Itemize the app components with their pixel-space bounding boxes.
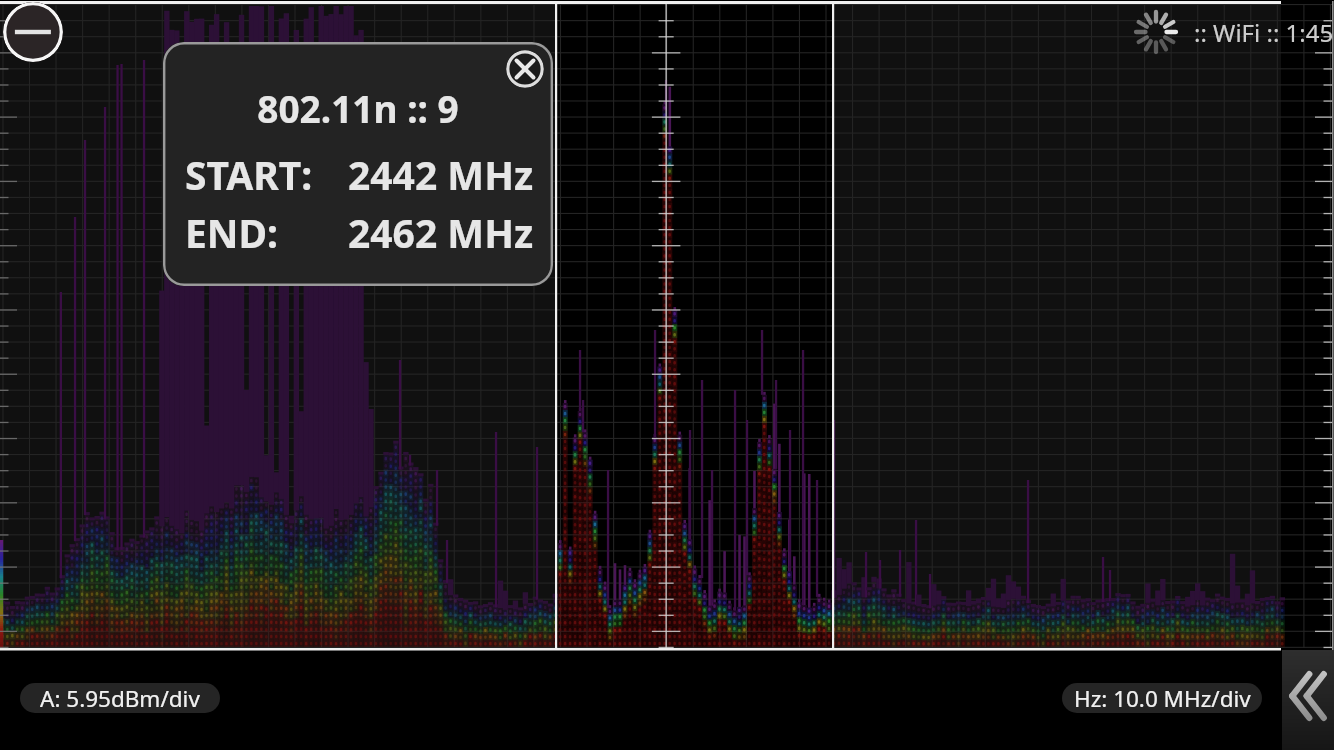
staticText: END: <box>185 206 279 259</box>
staticText: 2462 MHz <box>348 206 534 259</box>
staticText: :: WiFi :: 1:45 <box>1194 16 1334 49</box>
button[interactable]: Collapse panel <box>1282 650 1334 750</box>
button[interactable]: Close <box>506 50 544 88</box>
staticText: Hz: 10.0 MHz/div <box>1074 683 1251 713</box>
button[interactable]: Hz: 10.0 MHz/div <box>1062 683 1262 713</box>
staticText: A: 5.95dBm/div <box>40 683 200 713</box>
button[interactable]: Zoom out <box>3 2 63 62</box>
button[interactable]: A: 5.95dBm/div <box>20 683 220 713</box>
staticText: 802.11n :: 9 <box>163 83 553 133</box>
staticText: START: <box>185 148 313 201</box>
staticText: 2442 MHz <box>348 148 534 201</box>
button[interactable]: Scanning <box>1135 11 1177 53</box>
